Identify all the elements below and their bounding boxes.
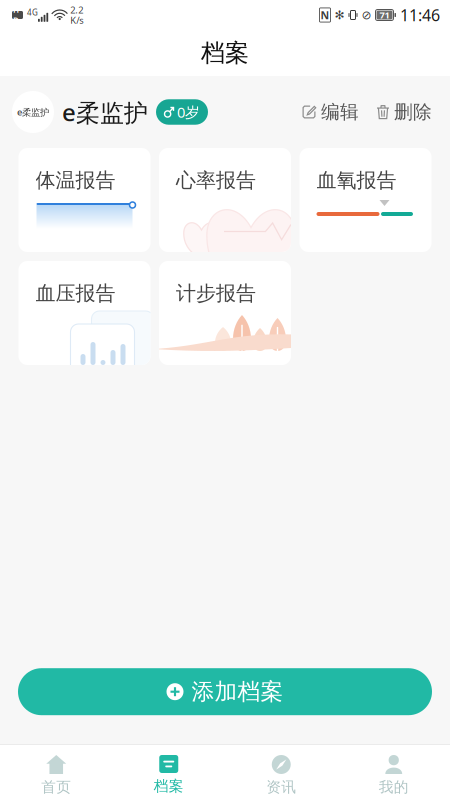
button[interactable]: 血氧报告 — [299, 148, 431, 252]
staticText: 添加档案 — [191, 678, 283, 706]
staticText: 血氧报告 — [316, 168, 396, 193]
button[interactable]: 血压报告 — [18, 261, 150, 365]
staticText: ✻ — [334, 8, 344, 22]
staticText: 编辑 — [321, 100, 359, 123]
staticText: N — [320, 8, 329, 22]
staticText: 档案 — [154, 777, 184, 795]
staticText: HD — [13, 4, 22, 26]
staticText: 4G — [27, 7, 38, 18]
staticText: 2.2 — [70, 4, 83, 16]
staticText: ⊘ — [361, 8, 371, 22]
button[interactable]: 添加档案 — [0, 668, 450, 744]
button[interactable]: 我的 — [337, 745, 450, 800]
button[interactable]: 档案 — [112, 745, 225, 800]
button[interactable]: 删除 — [373, 90, 436, 133]
staticText: K/s — [70, 14, 83, 26]
button[interactable]: 编辑 — [298, 90, 363, 133]
staticText: e柔监护 — [17, 106, 49, 118]
staticText: 体温报告 — [35, 168, 115, 193]
staticText: 档案 — [201, 38, 249, 68]
button[interactable]: 资讯 — [225, 745, 337, 800]
staticText: 心率报告 — [176, 168, 256, 193]
staticText: 资讯 — [266, 778, 296, 796]
staticText: e柔监护 — [62, 96, 148, 128]
staticText: 11:46 — [400, 4, 440, 26]
staticText: 首页 — [41, 778, 71, 796]
button[interactable]: 计步报告 — [159, 261, 291, 365]
staticText: 我的 — [379, 778, 409, 796]
button[interactable]: 首页 — [0, 745, 112, 800]
staticText: 0岁 — [177, 102, 200, 122]
staticText: 计步报告 — [176, 281, 256, 306]
staticText: 删除 — [394, 100, 432, 123]
staticText: 血压报告 — [35, 281, 115, 306]
button[interactable]: 体温报告 — [18, 148, 150, 252]
staticText: 71 — [379, 9, 389, 21]
button[interactable]: 心率报告 — [159, 148, 291, 252]
